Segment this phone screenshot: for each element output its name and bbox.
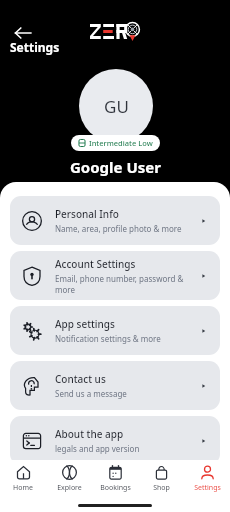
button[interactable]: Explore — [46, 460, 92, 498]
staticText: Home — [13, 483, 33, 493]
button[interactable]: Personal Info — [10, 196, 220, 245]
staticText: Settings — [194, 483, 221, 493]
button[interactable]: Shop — [138, 460, 184, 498]
button[interactable]: Home — [0, 460, 46, 498]
staticText: Personal Info — [55, 207, 119, 221]
staticText: Account Settings — [55, 257, 136, 271]
staticText: App settings — [55, 317, 115, 331]
staticText: Intermediate Low — [89, 138, 153, 148]
button[interactable]: Settings — [184, 460, 230, 498]
button[interactable]: Contact us — [10, 361, 220, 410]
staticText: Name, area, profile photo & more — [55, 223, 182, 234]
staticText: Settings — [10, 39, 60, 55]
button[interactable]: App settings — [10, 306, 220, 355]
staticText: Notification settings & more — [55, 333, 161, 344]
staticText: GU — [104, 95, 129, 118]
staticText: Shop — [153, 483, 170, 493]
staticText: About the app — [55, 427, 124, 441]
button[interactable]: Account Settings — [10, 251, 220, 300]
staticText: Explore — [57, 483, 82, 493]
staticText: Contact us — [55, 372, 106, 386]
staticText: legals and app version — [55, 443, 140, 454]
button[interactable]: Back — [10, 20, 36, 46]
staticText: Bookings — [100, 483, 131, 493]
staticText: Send us a message — [55, 388, 127, 399]
button[interactable]: Bookings — [92, 460, 138, 498]
staticText: Email, phone number, password & more — [55, 273, 200, 295]
button[interactable]: About the app — [10, 416, 220, 465]
staticText: Google User — [70, 157, 161, 177]
